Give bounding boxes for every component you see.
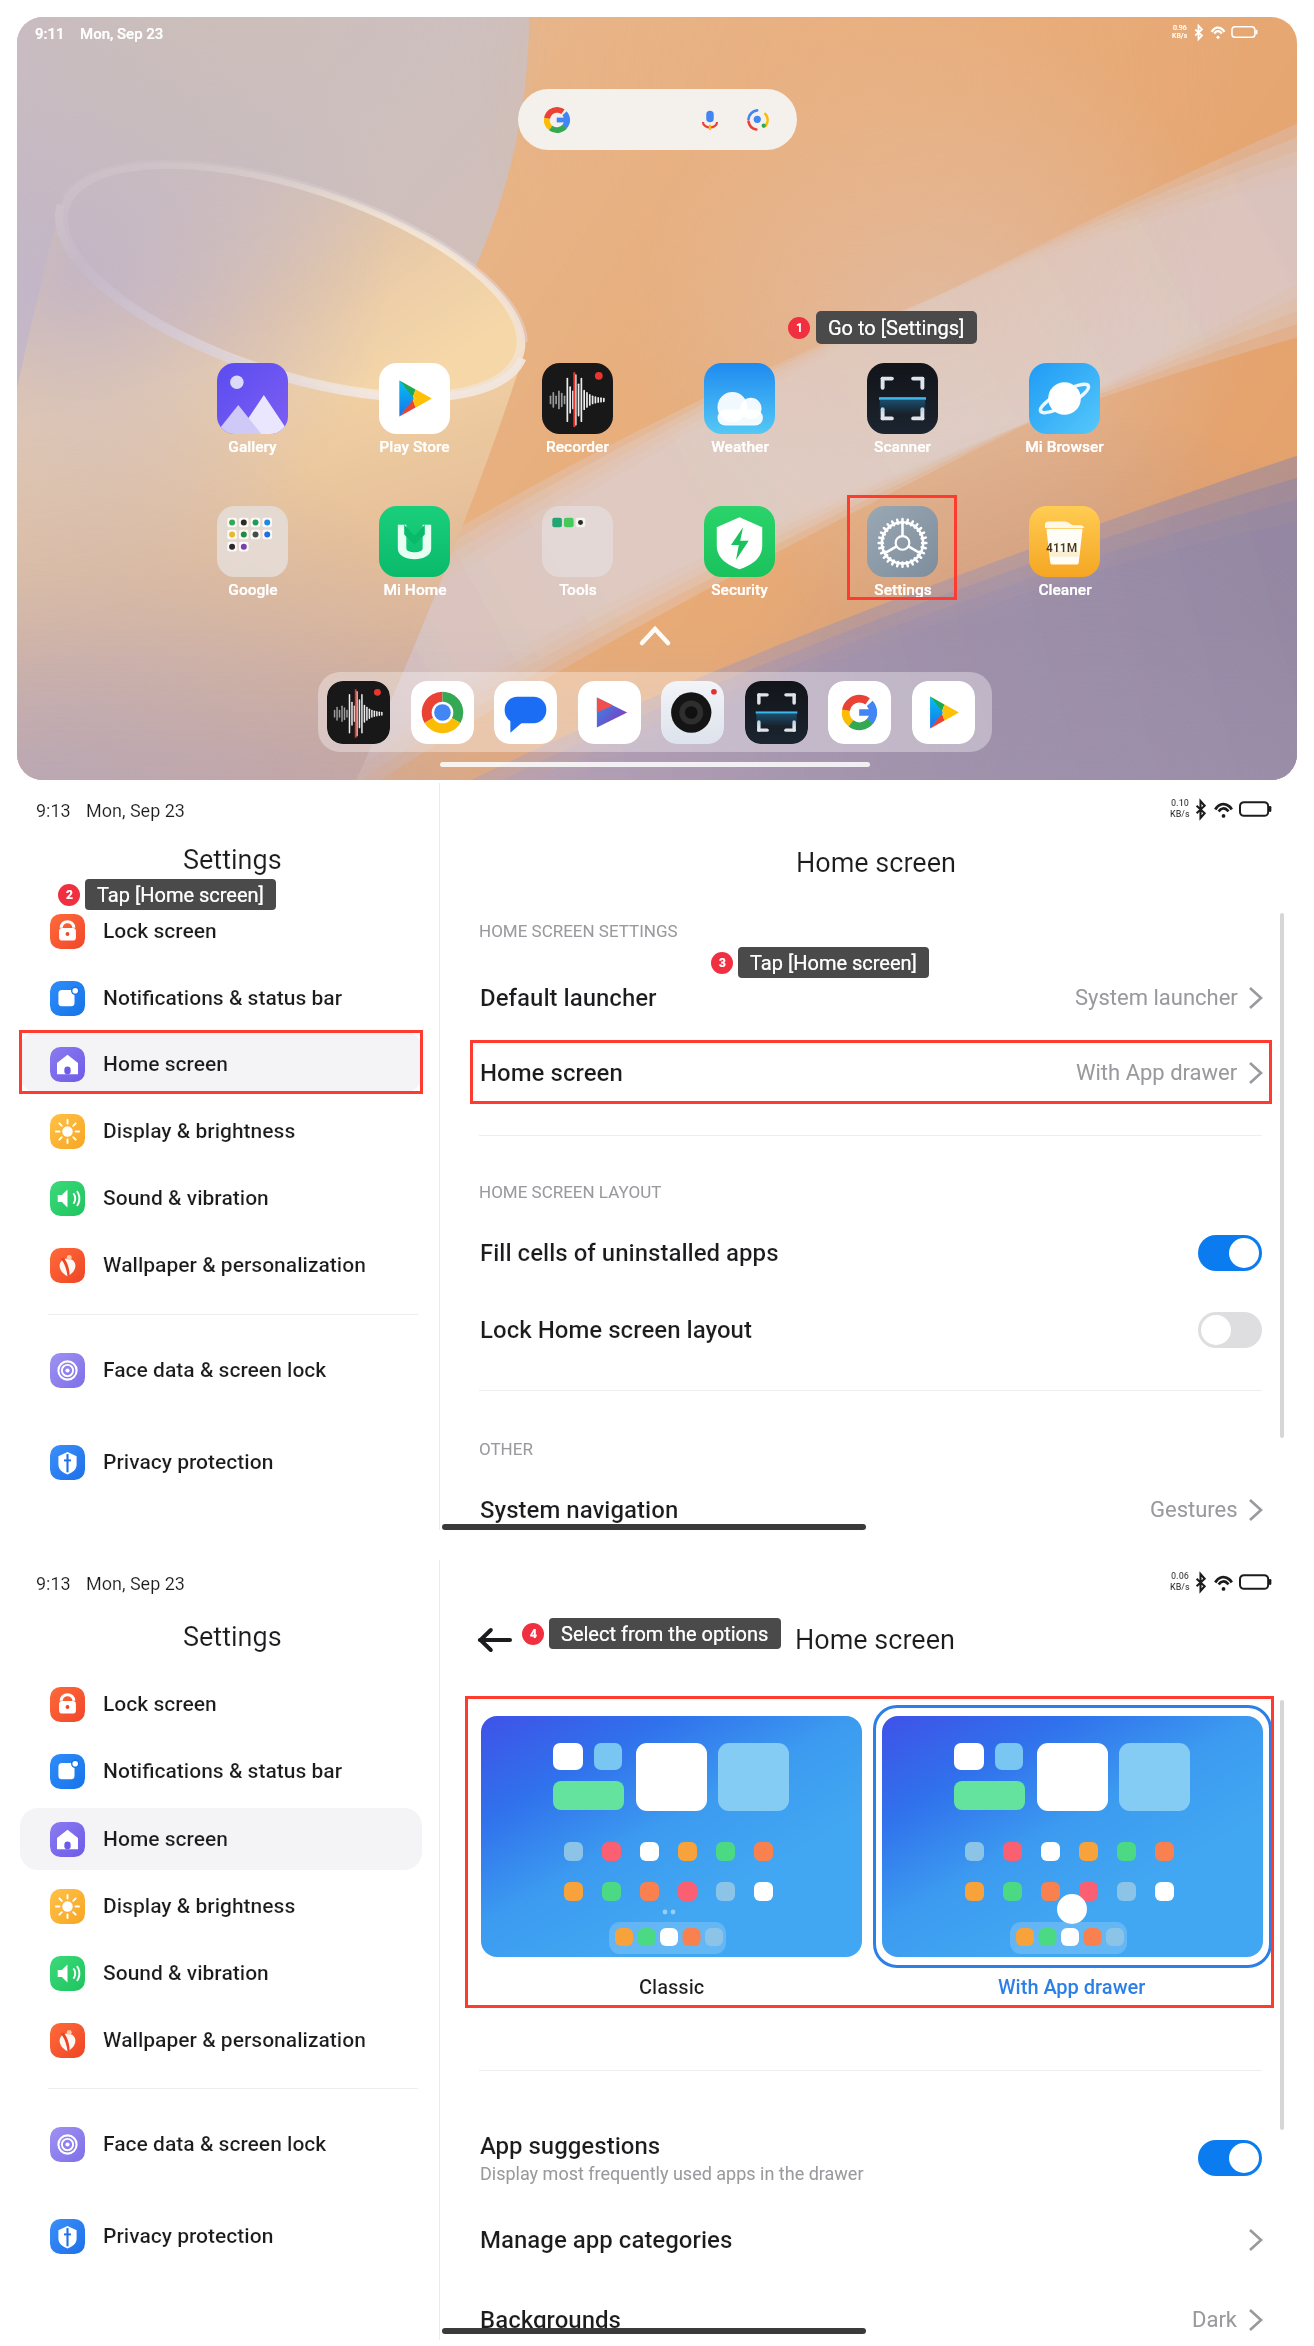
button[interactable]: Backgrounds [470, 2288, 1272, 2346]
staticText: Gestures [1150, 1497, 1238, 1523]
button[interactable] [481, 1716, 862, 1957]
button[interactable]: Tools [525, 506, 629, 606]
staticText: Privacy protection [103, 2224, 274, 2249]
button[interactable]: Face data & screen lock [20, 2113, 422, 2175]
button[interactable]: App suggestions [470, 2118, 1272, 2198]
button[interactable]: Security [687, 506, 791, 606]
button[interactable]: Weather [687, 363, 791, 463]
button[interactable]: Google Lens [736, 98, 780, 142]
staticText: Wallpaper & personalization [103, 2028, 366, 2053]
staticText: Classic [639, 1975, 705, 1998]
staticText: Display & brightness [103, 1894, 296, 1919]
button[interactable]: Default launcher [470, 966, 1272, 1030]
button[interactable]: Recorder [327, 681, 390, 744]
button[interactable] [20, 1808, 422, 1870]
button[interactable]: Google [828, 681, 891, 744]
button[interactable]: Gallery [200, 363, 304, 463]
staticText: 3 [719, 956, 726, 970]
staticText: Home screen [103, 1827, 228, 1852]
button[interactable]: Scanner [745, 681, 808, 744]
button[interactable]: Open app drawer [632, 617, 678, 655]
button[interactable]: Notifications & status bar [20, 1740, 422, 1802]
staticText: Select from the options [561, 1622, 769, 1645]
button[interactable]: Notifications & status bar [20, 967, 422, 1029]
staticText: Settings [183, 1621, 282, 1653]
button[interactable]: Lock Home screen layout [470, 1298, 1272, 1362]
staticText: OTHER [479, 1439, 533, 1459]
staticText: With App drawer [998, 1975, 1146, 1998]
button[interactable]: Play Store [912, 681, 975, 744]
button[interactable]: Search with Google [518, 89, 797, 150]
staticText: HOME SCREEN SETTINGS [479, 921, 678, 941]
staticText: Face data & screen lock [103, 1358, 327, 1383]
button[interactable]: Wallpaper & personalization [20, 1234, 422, 1296]
button[interactable]: Home screen [20, 1808, 422, 1870]
staticText: Settings [183, 844, 282, 876]
button[interactable]: Toggle [1198, 2140, 1262, 2176]
staticText: Scanner [874, 438, 931, 456]
staticText: With App drawer [1076, 1060, 1238, 1086]
staticText: KB/s [1172, 32, 1188, 40]
button[interactable]: Cleaner [1012, 506, 1116, 606]
staticText: Google [228, 581, 278, 599]
button[interactable]: Face data & screen lock [20, 1339, 422, 1401]
staticText: Notifications & status bar [103, 1759, 343, 1784]
button[interactable]: Home screen [20, 1033, 422, 1095]
button[interactable]: Video player [578, 681, 641, 744]
button[interactable]: Toggle [1198, 1235, 1262, 1271]
staticText: Go to [Settings] [828, 316, 965, 339]
staticText: Sound & vibration [103, 1186, 269, 1211]
button[interactable]: Sound & vibration [20, 1942, 422, 2004]
button[interactable]: Scanner [850, 363, 954, 463]
staticText: Home screen [480, 1059, 623, 1087]
staticText: Backgrounds [480, 2306, 621, 2334]
button[interactable]: Sound & vibration [20, 1167, 422, 1229]
button[interactable]: Manage app categories [470, 2208, 1272, 2272]
button[interactable]: Chrome [411, 681, 474, 744]
staticText: Mon, Sep 23 [80, 25, 164, 43]
button[interactable] [20, 1031, 422, 1093]
staticText: 1 [796, 321, 803, 335]
button[interactable]: Messages [494, 681, 557, 744]
button[interactable]: Privacy protection [20, 1431, 422, 1493]
button[interactable]: Lock screen [20, 900, 422, 962]
button[interactable]: Home screen [470, 1041, 1272, 1105]
button[interactable]: Play Store [362, 363, 466, 463]
button[interactable]: Recorder [525, 363, 629, 463]
button[interactable]: Mi Browser [1012, 363, 1116, 463]
staticText: System launcher [1075, 985, 1238, 1011]
button[interactable]: Settings [850, 506, 954, 606]
staticText: Home screen [795, 1624, 955, 1656]
staticText: 9:13 [36, 800, 71, 821]
button[interactable]: Voice search [688, 98, 732, 142]
staticText: Mi Home [383, 581, 447, 599]
button[interactable]: System navigation [470, 1478, 1272, 1542]
button[interactable]: Display & brightness [20, 1875, 422, 1937]
staticText: Notifications & status bar [103, 986, 343, 1011]
staticText: Display & brightness [103, 1119, 296, 1144]
button[interactable]: Display & brightness [20, 1100, 422, 1162]
button[interactable]: Back [470, 1616, 518, 1664]
staticText: App suggestions [480, 2132, 661, 2160]
button[interactable] [873, 1705, 1272, 1968]
staticText: 9:11 [35, 25, 65, 43]
button[interactable]: Lock screen [20, 1673, 422, 1735]
button[interactable] [882, 1716, 1263, 1957]
button[interactable]: Camera [661, 681, 724, 744]
button[interactable]: Fill cells of uninstalled apps [470, 1221, 1272, 1285]
staticText: 0.06 [1171, 1571, 1189, 1582]
staticText: 9:13 [36, 1573, 71, 1594]
staticText: Mon, Sep 23 [86, 800, 185, 821]
staticText: Display most frequently used apps in the… [480, 2163, 864, 2184]
staticText: Lock screen [103, 1692, 217, 1717]
button[interactable]: Toggle [1198, 1312, 1262, 1348]
button[interactable]: Privacy protection [20, 2205, 422, 2267]
staticText: System navigation [480, 1496, 679, 1524]
staticText: KB/s [1170, 1582, 1190, 1593]
button[interactable]: Wallpaper & personalization [20, 2009, 422, 2071]
button[interactable]: Google [200, 506, 304, 606]
staticText: 4 [530, 1627, 537, 1641]
button[interactable]: Mi Home [362, 506, 466, 606]
staticText: 0.10 [1171, 798, 1189, 809]
staticText: Fill cells of uninstalled apps [480, 1239, 779, 1267]
